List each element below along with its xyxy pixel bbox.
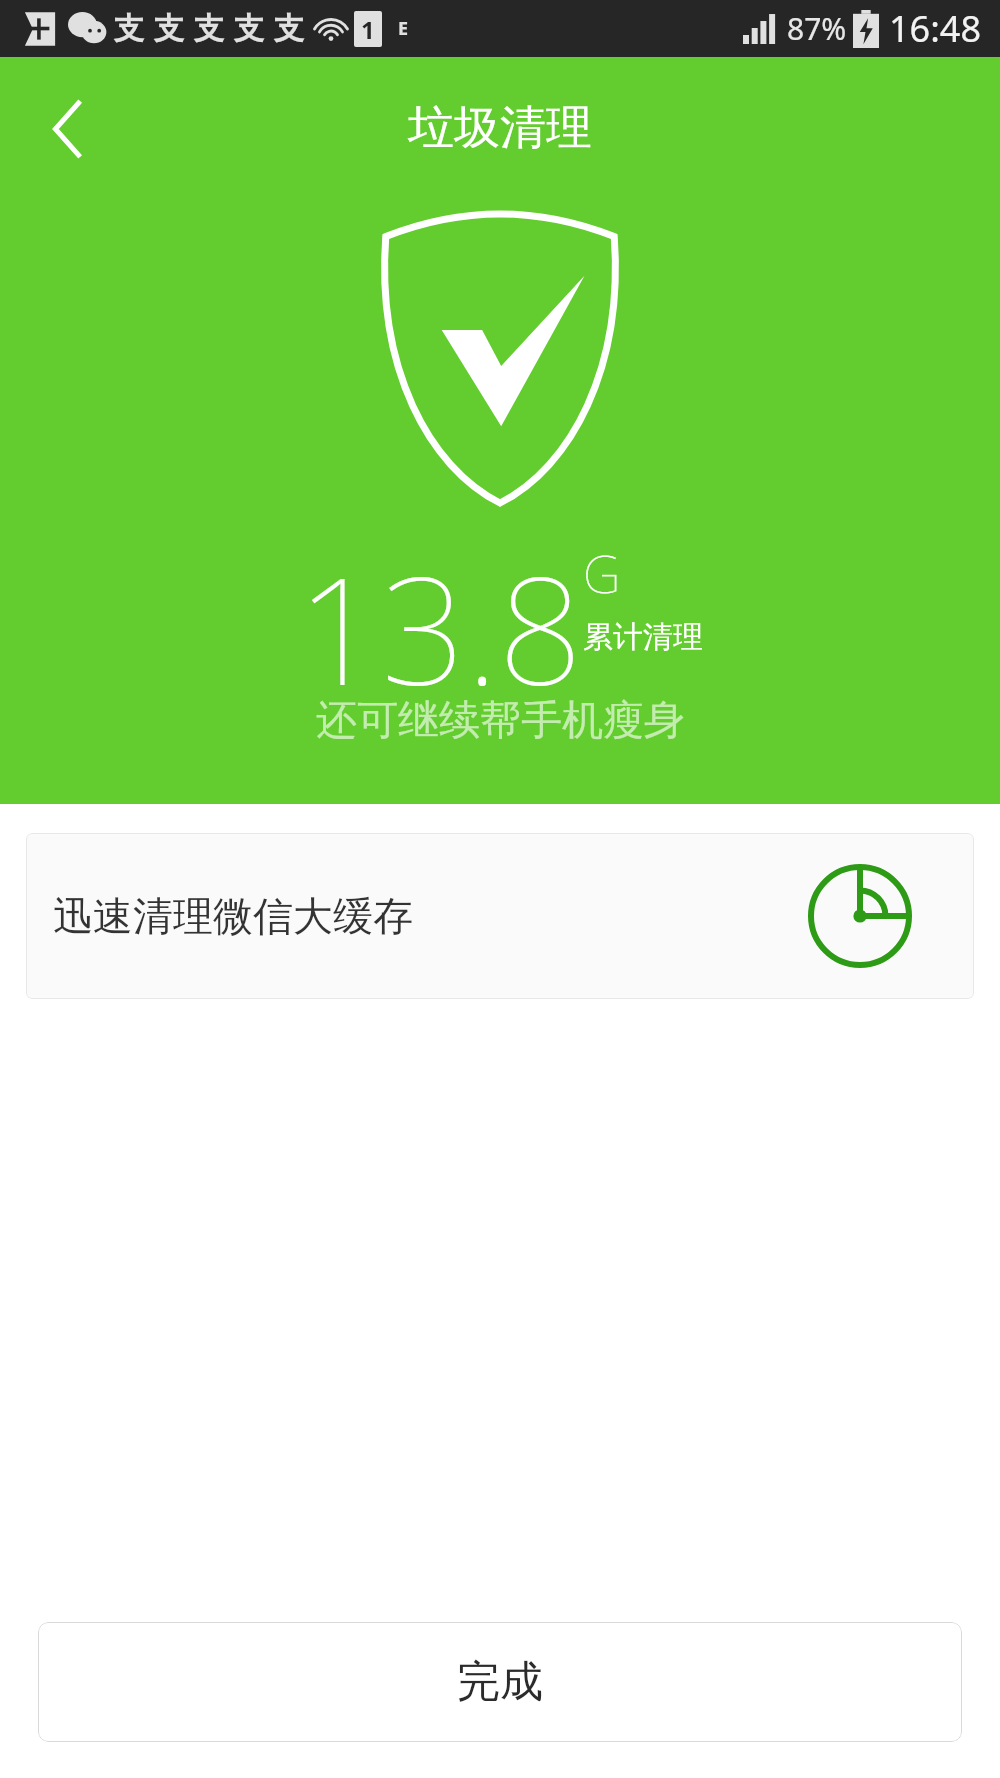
staticText: 累计清理 [583, 618, 703, 656]
staticText: G [583, 537, 621, 608]
staticText: 支 [274, 10, 304, 48]
staticText: 迅速清理微信大缓存 [53, 891, 413, 941]
staticText: 支 [154, 10, 184, 48]
button[interactable]: 迅速清理微信大缓存 [26, 833, 974, 999]
staticText: 支 [114, 10, 144, 48]
staticText: 16:48 [889, 4, 982, 53]
staticText: 完成 [457, 1655, 543, 1709]
staticText: 87% [787, 8, 847, 49]
staticText: 13.8 [297, 527, 583, 729]
staticText: 支 [234, 10, 264, 48]
button[interactable]: Back [34, 95, 102, 163]
staticText: 1 [361, 13, 375, 46]
staticText: E [398, 16, 409, 41]
staticText: 垃圾清理 [408, 99, 592, 157]
button[interactable]: 完成 [38, 1622, 962, 1742]
staticText: 还可继续帮手机瘦身 [316, 695, 685, 747]
staticText: 支 [194, 10, 224, 48]
